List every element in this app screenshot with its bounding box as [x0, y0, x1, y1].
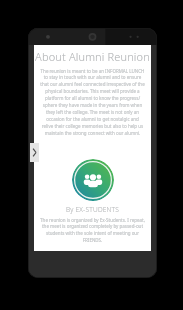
staticText: By EX-STUDENTS [34, 205, 151, 214]
button[interactable]: Ex-students [72, 159, 114, 201]
staticText: About Alumni Reunion [34, 49, 151, 64]
staticText: The reunion is meant to be an INFORMAL L… [40, 68, 145, 137]
staticText: The reunion is organized by Ex-Students.… [40, 217, 145, 244]
button[interactable]: Open navigation drawer [30, 143, 39, 162]
